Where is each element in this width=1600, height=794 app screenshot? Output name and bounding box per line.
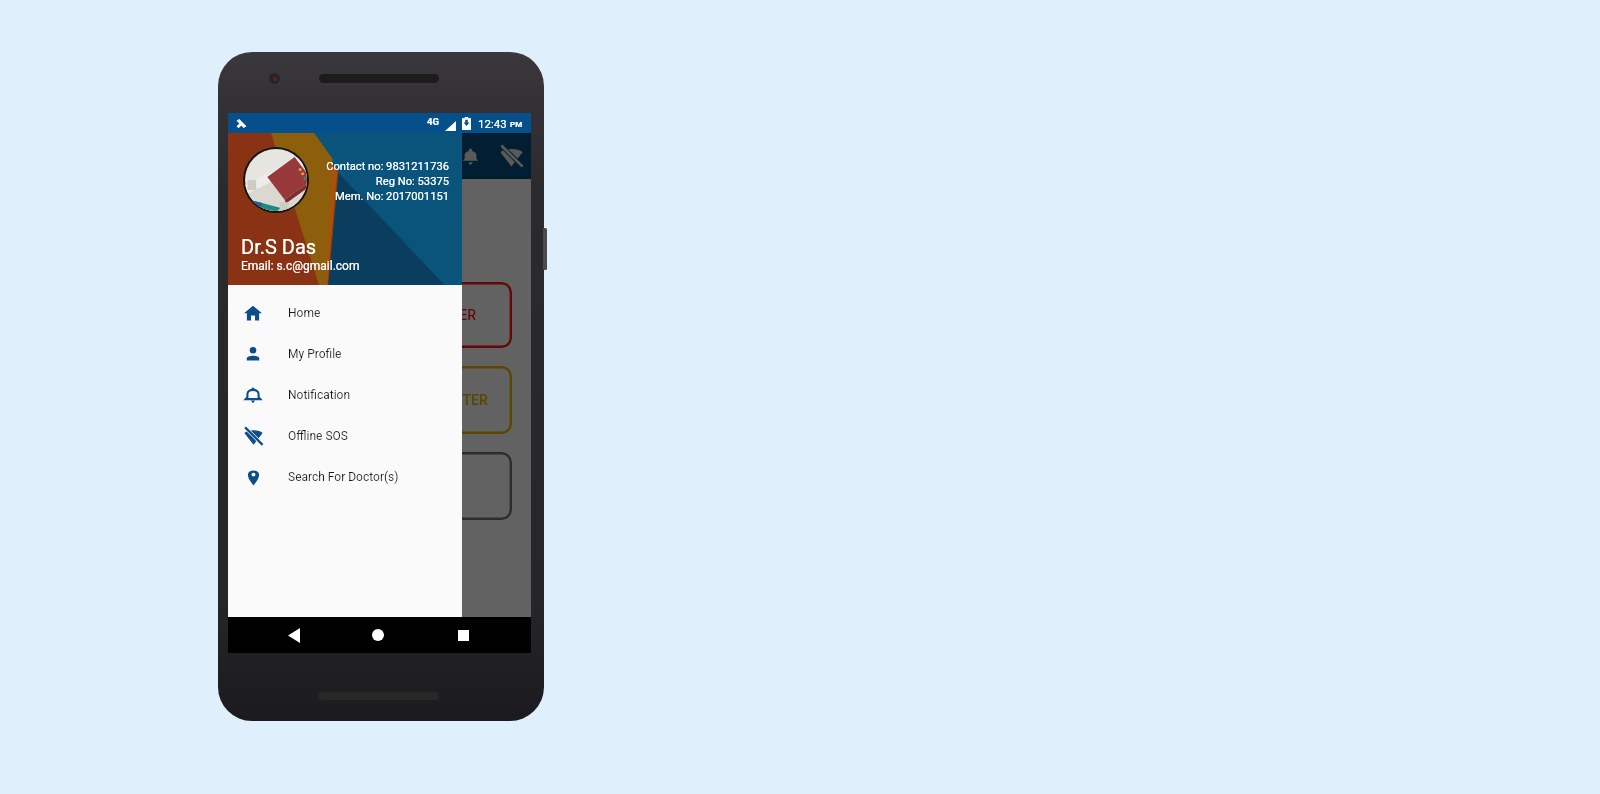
staticText: Dr.S Das — [241, 235, 317, 258]
staticText: Search For Doctor(s) — [288, 470, 399, 484]
staticText: PM — [510, 120, 523, 129]
staticText: VIEW DEATH REGISTER — [328, 307, 477, 323]
staticText: Reg No: 53375 — [375, 175, 449, 188]
staticText: Offline SOS — [288, 429, 348, 443]
staticText: Email: s.c@gmail.com — [241, 259, 360, 273]
staticText: Mem. No: 2017001151 — [335, 190, 449, 203]
button[interactable]: VIEW DEATH REGISTER — [244, 282, 512, 348]
staticText: Contact no: 9831211736 — [326, 160, 449, 173]
staticText: My Profile — [288, 347, 342, 361]
staticText: 4G — [427, 116, 439, 127]
button[interactable] — [244, 452, 512, 520]
button[interactable]: Home — [228, 292, 462, 333]
button[interactable]: My Profile — [228, 333, 462, 374]
staticText: VIEW BIRTH REGISTER — [344, 392, 488, 408]
button[interactable]: Recent apps — [447, 619, 479, 651]
button[interactable]: Notifications — [452, 138, 488, 174]
button[interactable]: VIEW BIRTH REGISTER — [244, 366, 512, 434]
button[interactable]: Search For Doctor(s) — [228, 456, 462, 497]
staticText: Notification — [288, 388, 351, 402]
staticText: 12:43 — [478, 117, 507, 130]
button[interactable]: Home — [362, 619, 394, 651]
staticText: Home — [288, 306, 321, 320]
button[interactable]: Offline SOS — [228, 415, 462, 456]
button[interactable]: Back — [278, 619, 310, 651]
button[interactable]: Offline SOS — [493, 138, 529, 174]
button[interactable]: Notification — [228, 374, 462, 415]
